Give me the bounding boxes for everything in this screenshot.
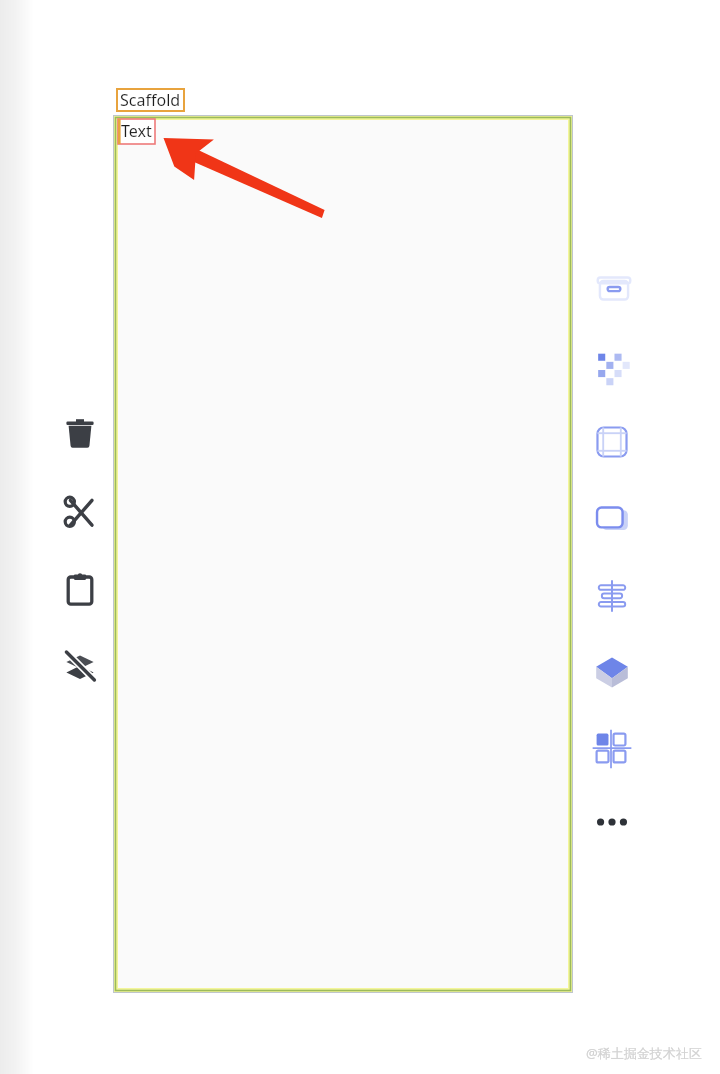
button[interactable]: Padding	[586, 416, 638, 468]
staticText: @稀土掘金技术社区	[586, 1044, 702, 1062]
button[interactable]: Transparency	[588, 340, 640, 392]
staticText: Text	[121, 120, 152, 142]
button[interactable]: Delete	[56, 410, 104, 458]
button[interactable]: More	[586, 796, 638, 848]
button[interactable]: Cut	[56, 488, 104, 536]
button[interactable]: Box	[588, 263, 640, 315]
button[interactable]: Paste	[56, 566, 104, 614]
button[interactable]: Hide layers	[56, 642, 104, 690]
button[interactable]: Text	[118, 119, 155, 144]
button[interactable]: Scaffold	[120, 89, 181, 111]
button[interactable]: 3D	[586, 646, 638, 698]
button[interactable]: Surface	[586, 493, 638, 545]
button[interactable]	[118, 120, 568, 988]
button[interactable]: Grid	[586, 723, 638, 775]
staticText: Scaffold	[120, 89, 181, 111]
button[interactable]: Align	[586, 570, 638, 622]
